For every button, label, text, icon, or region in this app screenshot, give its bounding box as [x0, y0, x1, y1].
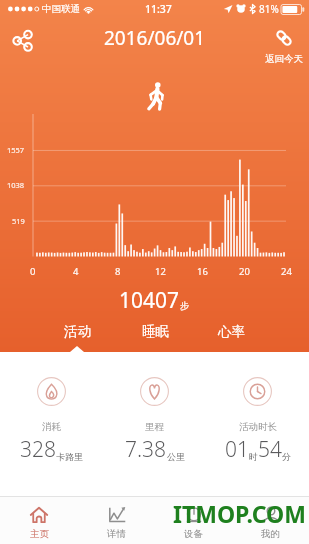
button[interactable]: 分享: [4, 22, 40, 58]
button[interactable]: 心率: [205, 321, 257, 341]
staticText: 时: [249, 451, 258, 462]
button[interactable]: 返回今天: [265, 30, 303, 65]
staticText: 详情: [107, 528, 126, 540]
staticText: 公里: [167, 451, 185, 462]
button[interactable]: 活动: [51, 321, 103, 341]
staticText: 519: [12, 216, 25, 226]
staticText: 8: [115, 265, 121, 278]
staticText: 1557: [7, 145, 25, 155]
staticText: 心率: [218, 323, 245, 340]
staticText: 54: [258, 435, 282, 464]
staticText: 11:37: [145, 2, 172, 16]
button[interactable]: 睡眠: [129, 321, 181, 341]
staticText: ITMOP.COM: [173, 498, 306, 529]
staticText: 步: [180, 300, 190, 312]
staticText: 7.38: [125, 435, 167, 464]
staticText: 0: [30, 265, 36, 278]
staticText: 分: [282, 451, 291, 462]
staticText: 主页: [30, 528, 49, 540]
staticText: 里程: [145, 421, 164, 433]
staticText: 4: [73, 265, 79, 278]
staticText: 24: [281, 265, 292, 278]
staticText: 我的: [261, 528, 280, 540]
staticText: 睡眠: [142, 323, 169, 340]
staticText: 2016/06/01: [104, 25, 206, 51]
staticText: 设备: [184, 528, 203, 540]
staticText: 活动: [64, 323, 91, 340]
staticText: 卡路里: [56, 451, 83, 462]
button[interactable]: 主页: [0, 497, 78, 544]
button[interactable]: 详情: [78, 497, 155, 544]
button[interactable]: 消耗: [0, 362, 103, 496]
staticText: 中国联通: [42, 3, 80, 15]
staticText: 328: [20, 435, 56, 464]
button[interactable]: 里程: [103, 362, 206, 496]
staticText: 返回今天: [265, 53, 303, 65]
staticText: 10407: [119, 286, 180, 315]
staticText: 20: [239, 265, 250, 278]
staticText: 81%: [259, 2, 279, 16]
button[interactable]: 设备: [155, 497, 232, 544]
button[interactable]: 活动时长: [206, 362, 309, 496]
staticText: 活动时长: [239, 421, 277, 433]
button[interactable]: 我的: [232, 497, 309, 544]
staticText: 1038: [7, 180, 25, 190]
staticText: 12: [155, 265, 166, 278]
staticText: 消耗: [42, 421, 61, 433]
staticText: 16: [197, 265, 208, 278]
staticText: 01: [225, 435, 249, 464]
